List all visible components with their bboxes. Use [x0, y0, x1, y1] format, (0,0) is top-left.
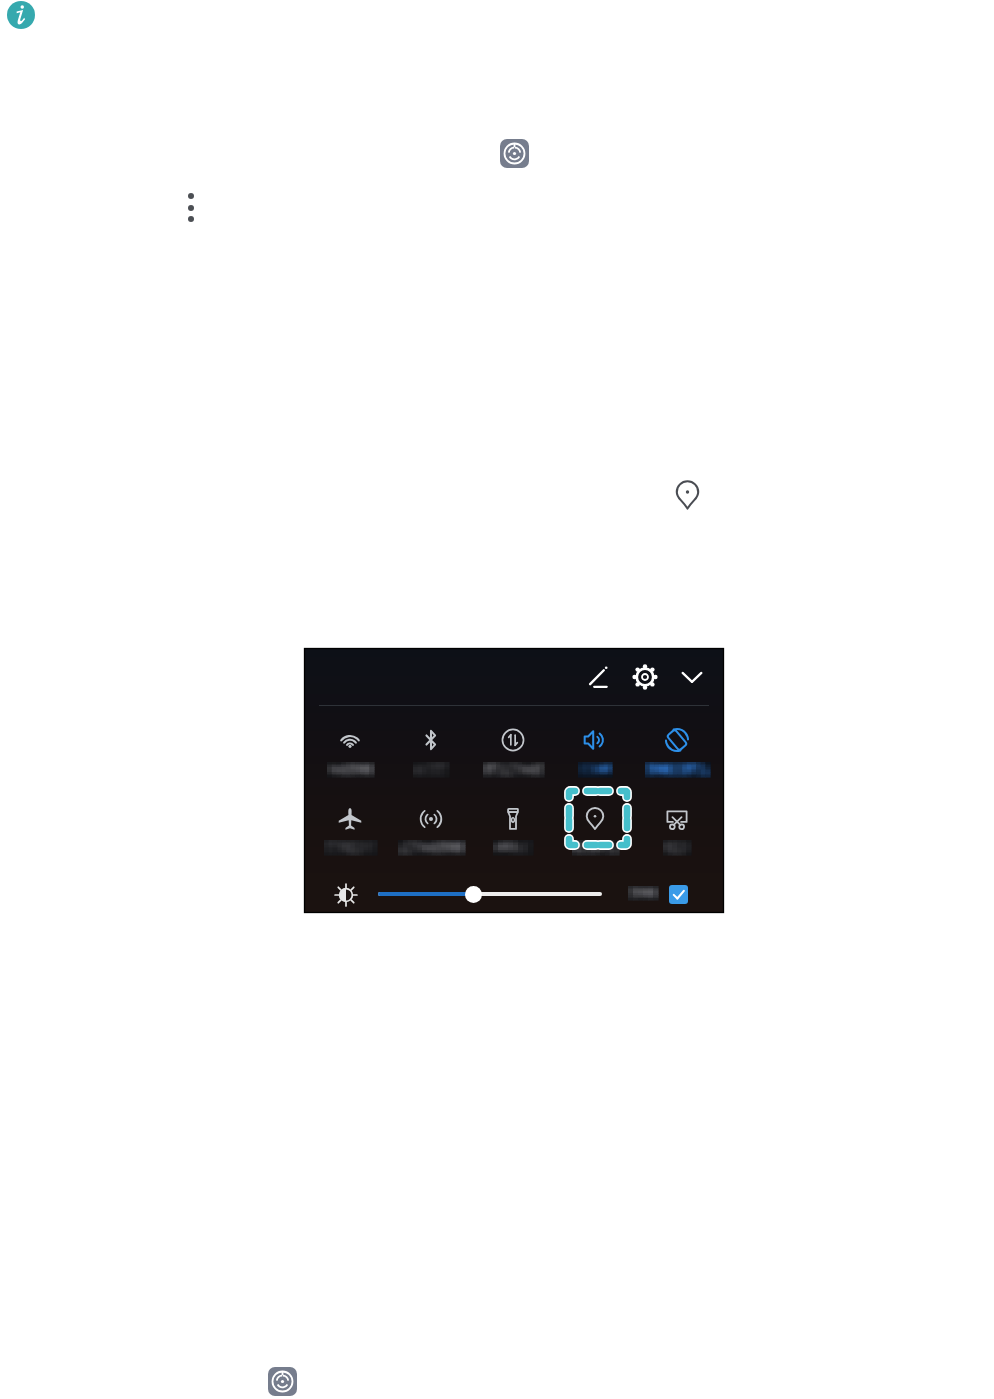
button[interactable]: Sound: [573, 718, 617, 776]
button[interactable]: Information: [7, 1, 35, 29]
button[interactable]: Hotspot: [409, 797, 453, 855]
button[interactable]: Edit: [587, 665, 611, 689]
button[interactable]: Settings: [633, 665, 657, 689]
button[interactable]: Location service app: [500, 139, 529, 168]
button[interactable]: More options: [179, 188, 203, 230]
button[interactable]: Airplane mode: [328, 797, 372, 855]
button[interactable]: Screenshot: [655, 797, 699, 855]
button[interactable]: Flashlight: [491, 797, 535, 855]
button[interactable]: Location: [573, 797, 617, 855]
button[interactable]: Collapse: [680, 665, 704, 689]
button[interactable]: Wi-Fi: [328, 718, 372, 776]
button[interactable]: Auto-rotate: [655, 718, 699, 776]
button[interactable]: Auto brightness: [669, 885, 688, 904]
button[interactable]: Mobile data: [491, 718, 535, 776]
button[interactable]: Location: [672, 480, 703, 511]
button[interactable]: Bluetooth: [409, 718, 453, 776]
button[interactable]: Brightness slider: [465, 886, 482, 903]
button[interactable]: Location service app: [268, 1367, 297, 1396]
